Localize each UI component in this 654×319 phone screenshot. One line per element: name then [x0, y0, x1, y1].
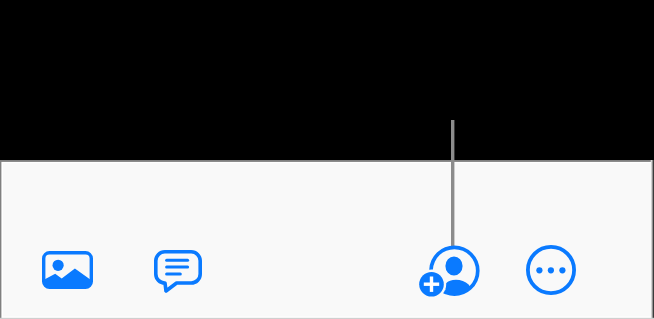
button[interactable]: Messages	[149, 245, 207, 297]
button[interactable]: Add person	[414, 240, 486, 303]
button[interactable]: More options	[521, 240, 581, 300]
button[interactable]: Photos	[37, 246, 98, 294]
